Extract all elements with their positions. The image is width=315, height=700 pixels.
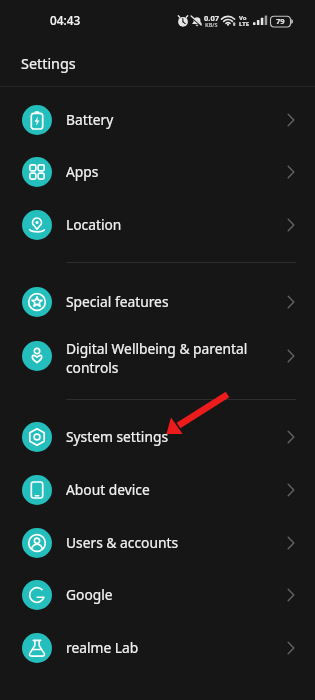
other: Annotation arrow <box>0 0 315 700</box>
button[interactable]: Battery <box>0 93 315 146</box>
staticText: Settings <box>21 54 76 74</box>
staticText: Location <box>66 215 257 234</box>
staticText: 0.07 <box>204 13 219 23</box>
staticText: Apps <box>66 162 257 181</box>
button[interactable]: System settings <box>0 410 315 463</box>
staticText: Google <box>66 585 257 604</box>
staticText: LTE <box>239 20 250 28</box>
button[interactable]: Apps <box>0 145 315 198</box>
button[interactable]: Users & accounts <box>0 516 315 569</box>
staticText: 04:43 <box>50 12 81 28</box>
staticText: Vo <box>239 14 247 22</box>
staticText: realme Lab <box>66 638 257 657</box>
button[interactable]: Google <box>0 568 315 621</box>
staticText: Battery <box>66 110 257 129</box>
staticText: Digital Wellbeing & parental controls <box>66 339 257 377</box>
button[interactable]: Location <box>0 198 315 251</box>
staticText: Special features <box>66 292 257 311</box>
staticText: 79 <box>276 16 285 26</box>
button[interactable]: Special features <box>0 275 315 328</box>
button[interactable]: realme Lab <box>0 621 315 674</box>
staticText: KB/S <box>205 21 218 28</box>
button[interactable]: About device <box>0 463 315 516</box>
button[interactable]: Digital Wellbeing & parental controls <box>0 327 315 385</box>
staticText: About device <box>66 480 257 499</box>
staticText: System settings <box>66 427 257 446</box>
staticText: Users & accounts <box>66 533 257 552</box>
